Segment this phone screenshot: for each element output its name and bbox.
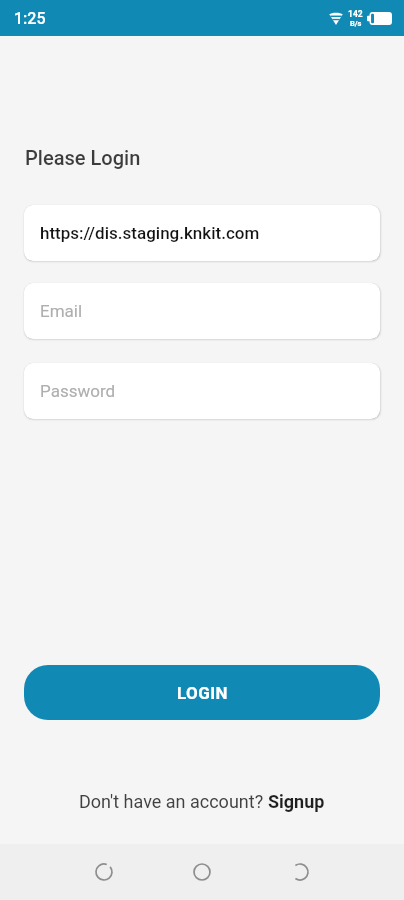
button[interactable]: Home [174,844,230,900]
staticText: 1:25 [14,9,46,28]
staticText: Password [40,381,116,401]
button[interactable]: Signup [268,791,325,812]
staticText: Signup [268,791,325,812]
button[interactable]: Recents [272,844,328,900]
staticText: B/s [350,19,362,28]
staticText: Please Login [25,146,141,169]
staticText: LOGIN [177,683,228,703]
button[interactable]: Back [76,844,132,900]
staticText: https://dis.staging.knkit.com [40,223,260,243]
staticText: Email [40,301,83,321]
staticText: 142 [348,9,363,19]
button[interactable]: Password [24,363,380,419]
staticText: Don't have an account? [79,791,268,812]
button[interactable]: LOGIN [24,665,380,720]
button[interactable]: Email [24,283,380,339]
button[interactable]: https://dis.staging.knkit.com [24,205,380,261]
